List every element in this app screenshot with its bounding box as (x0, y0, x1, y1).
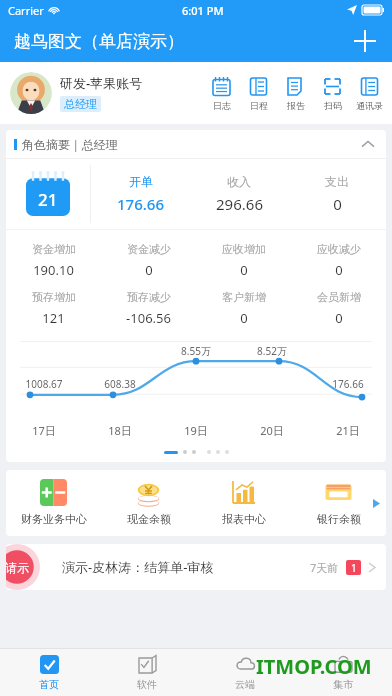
button[interactable]: 资金增加 (6, 236, 101, 284)
button[interactable]: 通讯录 (353, 76, 386, 111)
staticText: 176.66 (310, 377, 386, 391)
button[interactable]: 资金减少 (101, 236, 196, 284)
staticText: Carrier (8, 3, 44, 18)
staticText: 7天前 (310, 560, 339, 575)
button[interactable]: Add (348, 24, 382, 58)
staticText: 1008.67 (6, 377, 82, 391)
button[interactable]: 首页 (0, 649, 98, 696)
button[interactable]: 请示 (6, 544, 386, 590)
button[interactable]: 报告 (279, 76, 312, 111)
staticText: 0 (335, 261, 343, 279)
button[interactable]: 开单 (91, 159, 190, 229)
staticText: 财务业务中心 (21, 512, 87, 526)
button[interactable]: 支出 (288, 159, 386, 229)
staticText: 越鸟图文（单店演示） (14, 31, 184, 52)
staticText: 银行余额 (317, 512, 361, 526)
staticText: 客户新增 (222, 290, 266, 304)
staticText: 608.38 (82, 377, 158, 391)
button[interactable]: 应收增加 (196, 236, 291, 284)
button[interactable]: 角色摘要｜总经理 (6, 130, 386, 158)
staticText: 0 (333, 194, 342, 214)
staticText: 1 (351, 561, 357, 575)
staticText: 8.52万 (234, 344, 310, 358)
staticText: 190.10 (33, 261, 74, 279)
staticText: 通讯录 (356, 100, 383, 111)
staticText: 扫码 (324, 100, 342, 111)
button[interactable]: 应收减少 (291, 236, 386, 284)
staticText: 17日 (6, 423, 82, 438)
staticText: 资金增加 (32, 242, 76, 256)
button[interactable]: 日程 (242, 76, 275, 111)
button[interactable]: 报表中心 (196, 479, 291, 526)
staticText: 集市 (333, 678, 353, 691)
staticText: 会员新增 (317, 290, 361, 304)
button[interactable]: 集市 (294, 649, 392, 696)
staticText: 总经理 (64, 97, 97, 111)
staticText: 18日 (82, 423, 158, 438)
button[interactable]: 扫码 (316, 76, 349, 111)
staticText: 日志 (213, 100, 231, 111)
staticText: 0 (240, 309, 248, 327)
staticText: 0 (145, 261, 153, 279)
staticText: 请示 (6, 560, 29, 575)
button[interactable]: 银行余额 (291, 479, 386, 526)
staticText: 应收增加 (222, 242, 266, 256)
staticText: 0 (240, 261, 248, 279)
button[interactable]: 预存增加 (6, 284, 101, 332)
staticText: 176.66 (117, 194, 164, 214)
staticText: 现金余额 (127, 512, 171, 526)
staticText: 云端 (235, 678, 255, 691)
staticText: 首页 (39, 678, 59, 691)
staticText: 19日 (158, 423, 234, 438)
button[interactable]: 日志 (205, 76, 238, 111)
staticText: 研发-苹果账号 (60, 74, 143, 92)
button[interactable]: 现金余额 (101, 479, 196, 526)
staticText: 报表中心 (222, 512, 266, 526)
staticText: 应收减少 (317, 242, 361, 256)
button[interactable]: 会员新增 (291, 284, 386, 332)
staticText: 8.55万 (158, 344, 234, 358)
button[interactable]: 客户新增 (196, 284, 291, 332)
staticText: 296.66 (216, 194, 263, 214)
button[interactable]: Profile avatar (10, 72, 52, 114)
staticText: 日程 (250, 100, 268, 111)
staticText: 6:01 PM (182, 3, 224, 18)
button[interactable]: 预存减少 (101, 284, 196, 332)
staticText: 角色摘要｜总经理 (22, 137, 118, 152)
staticText: 预存增加 (32, 290, 76, 304)
staticText: 预存减少 (127, 290, 171, 304)
staticText: 支出 (325, 174, 349, 189)
button[interactable]: 收入 (190, 159, 288, 229)
staticText: 报告 (287, 100, 305, 111)
staticText: 资金减少 (127, 242, 171, 256)
button[interactable]: 软件 (98, 649, 196, 696)
button[interactable]: 云端 (196, 649, 294, 696)
staticText: 演示-皮林涛：结算单-审核 (62, 558, 214, 576)
staticText: 121 (42, 309, 65, 327)
staticText: 开单 (129, 174, 153, 189)
staticText: 20日 (234, 423, 310, 438)
staticText: 收入 (227, 174, 251, 189)
staticText: -106.56 (126, 309, 171, 327)
staticText: ITMOP.COM (256, 653, 372, 680)
staticText: 21日 (310, 423, 386, 438)
staticText: 0 (335, 309, 343, 327)
button[interactable]: More shortcuts (369, 496, 383, 510)
button[interactable]: 财务业务中心 (6, 479, 101, 526)
staticText: 21 (38, 188, 58, 211)
staticText: 软件 (137, 678, 157, 691)
